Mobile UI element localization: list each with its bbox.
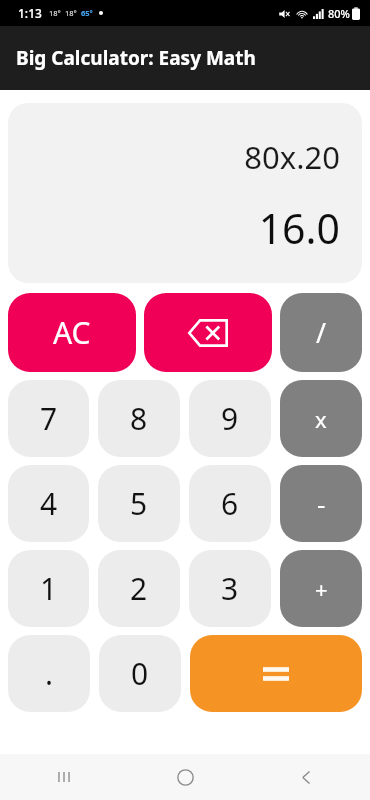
staticText: - bbox=[317, 486, 326, 521]
staticText: / bbox=[316, 314, 327, 351]
button[interactable]: / bbox=[280, 293, 362, 372]
button[interactable]: Backspace bbox=[144, 293, 272, 372]
button[interactable]: 7 bbox=[8, 380, 89, 457]
button[interactable]: 0 bbox=[99, 635, 181, 712]
button[interactable]: . bbox=[8, 635, 90, 712]
button[interactable]: 8 bbox=[98, 380, 180, 457]
button[interactable]: 9 bbox=[189, 380, 271, 457]
button[interactable]: 3 bbox=[189, 550, 271, 627]
button[interactable]: Equals bbox=[190, 635, 362, 712]
staticText: 4 bbox=[40, 483, 58, 524]
button[interactable]: 6 bbox=[189, 465, 271, 542]
staticText: 1 bbox=[40, 568, 58, 609]
button[interactable]: 2 bbox=[98, 550, 180, 627]
staticText: 7 bbox=[40, 398, 58, 439]
staticText: 8 bbox=[130, 398, 148, 439]
button[interactable]: Recent apps bbox=[40, 754, 88, 800]
button[interactable]: AC bbox=[8, 293, 136, 372]
staticText: Big Calculator: Easy Math bbox=[16, 45, 256, 71]
button[interactable]: x bbox=[280, 380, 362, 457]
button[interactable]: 5 bbox=[98, 465, 180, 542]
staticText: 5 bbox=[130, 483, 148, 524]
button[interactable]: Home bbox=[161, 754, 209, 800]
staticText: 6 bbox=[221, 483, 239, 524]
button[interactable]: - bbox=[280, 465, 362, 542]
staticText: 9 bbox=[221, 398, 239, 439]
button[interactable]: 1 bbox=[8, 550, 89, 627]
staticText: 65° bbox=[81, 8, 93, 18]
button[interactable]: 4 bbox=[8, 465, 89, 542]
staticText: + bbox=[315, 574, 328, 604]
button[interactable]: + bbox=[280, 550, 362, 627]
staticText: 16.0 bbox=[258, 200, 340, 256]
staticText: 80% bbox=[328, 6, 350, 21]
staticText: 80x.20 bbox=[244, 136, 340, 178]
staticText: 2 bbox=[130, 568, 148, 609]
button[interactable]: Back bbox=[282, 754, 330, 800]
staticText: 18° bbox=[49, 8, 61, 18]
staticText: 18° bbox=[65, 8, 77, 18]
staticText: x bbox=[315, 404, 327, 434]
staticText: AC bbox=[53, 312, 91, 353]
staticText: 0 bbox=[131, 653, 149, 694]
staticText: . bbox=[45, 653, 54, 694]
staticText: 3 bbox=[221, 568, 239, 609]
staticText: 1:13 bbox=[18, 5, 42, 21]
